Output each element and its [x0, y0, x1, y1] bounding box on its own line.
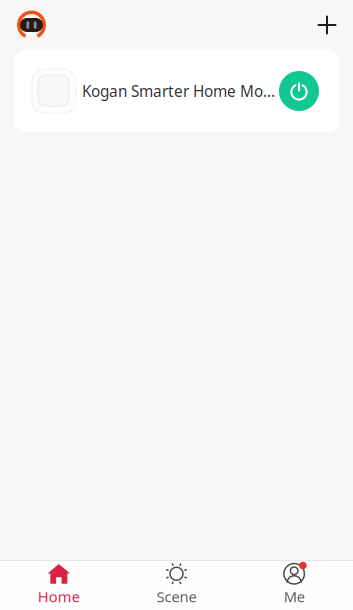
button[interactable]: Kogan Smarter Home Mo... [14, 50, 339, 132]
button[interactable]: Scene [118, 556, 235, 610]
staticText: Kogan Smarter Home Mo... [82, 81, 275, 101]
staticText: Home [38, 587, 80, 606]
button[interactable]: Me [235, 556, 353, 610]
staticText: Scene [156, 587, 196, 606]
button[interactable]: Add device [314, 2, 353, 48]
button[interactable]: Smart Home [0, 0, 46, 49]
button[interactable]: Home [0, 556, 118, 610]
staticText: Me [284, 587, 305, 606]
